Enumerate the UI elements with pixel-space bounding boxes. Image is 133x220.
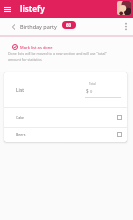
staticText: $ [86, 88, 89, 94]
button[interactable]: Mark list as done [0, 41, 133, 53]
staticText: Beers [16, 132, 26, 137]
staticText: 0 [90, 89, 93, 94]
button[interactable]: Profile [117, 1, 131, 15]
button[interactable]: Navigation menu [1, 3, 13, 15]
button[interactable]: 60 [62, 21, 76, 29]
staticText: List [16, 87, 25, 94]
button[interactable]: Beers [4, 127, 127, 142]
button[interactable]: Back [8, 18, 19, 35]
staticText: 60 [66, 22, 72, 28]
button[interactable]: More options [120, 18, 131, 35]
staticText: Mark list as done [20, 45, 53, 50]
button[interactable]: Cake [4, 107, 127, 127]
button[interactable]: Toggle Beers [117, 132, 122, 137]
staticText: Done lists will be moved to a new sectio… [8, 51, 107, 63]
staticText: Cake [16, 115, 25, 120]
button[interactable]: Toggle Cake [117, 115, 122, 120]
staticText: listefy [20, 3, 45, 14]
staticText: Birthday party [20, 23, 57, 30]
staticText: Total [89, 82, 96, 86]
